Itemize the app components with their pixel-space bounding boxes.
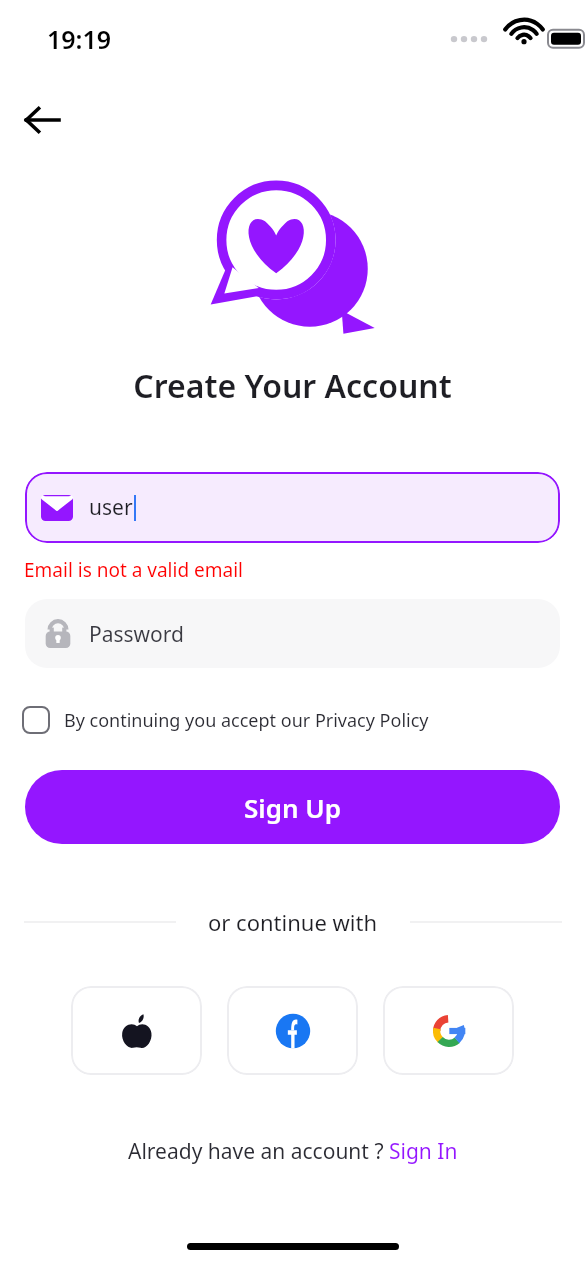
staticText: Email is not a valid email — [24, 557, 243, 583]
button[interactable]: Back — [12, 90, 72, 150]
button[interactable]: Password — [25, 599, 560, 668]
staticText: By continuing you accept our Privacy Pol… — [64, 708, 429, 733]
staticText: 19:19 — [47, 22, 112, 56]
staticText: Password — [89, 620, 184, 649]
button[interactable]: Already have an account ? Sign In — [128, 1137, 458, 1166]
staticText: or continue with — [208, 907, 378, 937]
staticText: user — [89, 493, 133, 522]
button[interactable]: By continuing you accept our Privacy Pol… — [22, 702, 429, 738]
button[interactable]: Sign Up — [25, 770, 560, 844]
button[interactable]: Facebook — [227, 986, 358, 1075]
button[interactable]: Google — [383, 986, 514, 1075]
button[interactable]: user — [25, 472, 560, 543]
button[interactable]: Apple — [71, 986, 202, 1075]
staticText: Sign Up — [244, 790, 341, 825]
staticText: Already have an account ? Sign In — [128, 1137, 458, 1166]
staticText: Create Your Account — [133, 364, 452, 408]
